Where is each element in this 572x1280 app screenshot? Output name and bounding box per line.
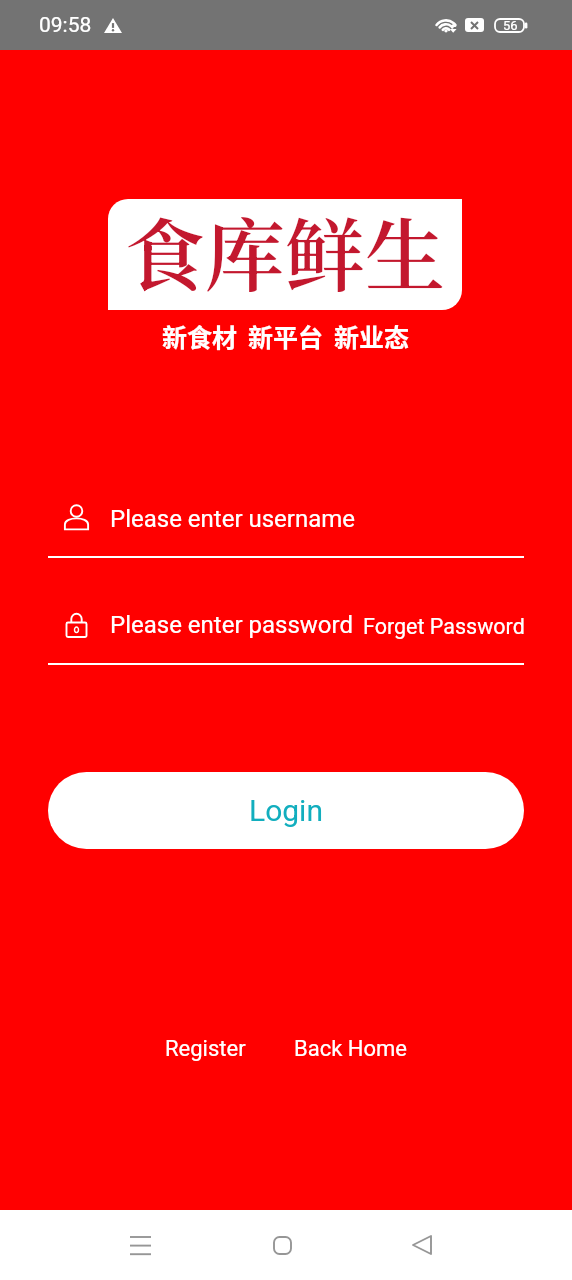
button[interactable]: Recent apps [110, 1220, 170, 1270]
staticText: 56 [503, 18, 518, 33]
button[interactable]: Back Home [294, 1036, 407, 1062]
button[interactable]: 食库鲜生 logo [108, 199, 462, 310]
staticText: 新食材 [162, 318, 238, 354]
staticText: Please enter password [110, 611, 353, 639]
button[interactable]: Register [165, 1036, 246, 1062]
button[interactable]: Forget Password [363, 600, 525, 655]
staticText: 新业态 [334, 318, 410, 354]
staticText: Forget Password [363, 614, 525, 639]
button[interactable]: Home [252, 1220, 312, 1270]
button[interactable]: Back [392, 1220, 452, 1270]
button[interactable]: Password input [48, 600, 363, 665]
staticText: 食库鲜生 [125, 199, 445, 304]
staticText: Please enter username [110, 505, 356, 533]
staticText: 新平台 [248, 318, 324, 354]
button[interactable]: Login [48, 772, 524, 849]
staticText: 09:58 [39, 13, 92, 38]
button[interactable]: Username input [48, 494, 524, 558]
staticText: Login [249, 793, 323, 828]
